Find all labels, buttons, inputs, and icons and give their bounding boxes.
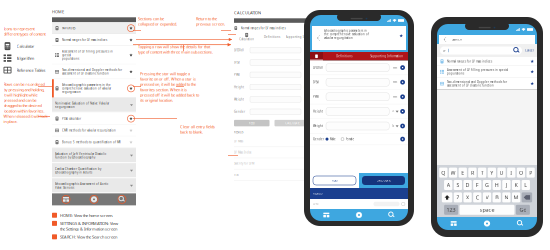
button[interactable]: J (502, 180, 511, 190)
button[interactable]: Home (310, 209, 343, 221)
staticText: L (524, 181, 527, 189)
button[interactable]: H (493, 180, 501, 190)
button[interactable]: W (449, 168, 457, 178)
button[interactable]: V (483, 192, 491, 202)
button[interactable]: Shift (442, 192, 452, 202)
button[interactable]: Home (52, 193, 80, 205)
button[interactable]: Go (516, 205, 530, 215)
staticText: LVID(d) (234, 48, 244, 52)
staticText: PWd (313, 95, 319, 98)
staticText: LV (443, 49, 446, 52)
staticText: Go (519, 206, 526, 213)
button[interactable]: K (512, 180, 520, 190)
staticText: Reference Tables (16, 67, 45, 73)
button[interactable]: 123 (444, 205, 458, 215)
button[interactable]: Delete (522, 192, 532, 202)
button[interactable]: PISA calculator (52, 113, 136, 124)
staticText: I (510, 169, 512, 176)
staticText: Calculation (239, 37, 254, 41)
button[interactable]: Settings (343, 209, 375, 221)
button[interactable]: Cardiac Chamber Quantification by Echoca… (52, 163, 136, 178)
button[interactable]: Search (504, 217, 537, 230)
staticText: mm (393, 95, 397, 98)
button[interactable]: Q (439, 168, 447, 178)
button[interactable]: Echocardiographic parameters in the comp… (52, 79, 136, 98)
button[interactable]: RESET (310, 173, 359, 188)
staticText: SEARCH: View the Search screen (60, 234, 117, 240)
staticText: Normal ranges for LV mass indices (62, 38, 107, 42)
staticText: RESET (331, 179, 337, 182)
button[interactable]: O (517, 168, 525, 178)
staticText: E (461, 169, 464, 176)
button[interactable]: Two-dimensional and Doppler methods for … (52, 64, 136, 79)
button[interactable]: Back (442, 35, 448, 44)
staticText: C (476, 194, 479, 201)
button[interactable]: U (497, 168, 506, 178)
button[interactable]: Assessment of LV filling pressures in sp… (52, 46, 136, 64)
staticText: SEARCH (452, 38, 462, 41)
button[interactable]: Bonus: 5 methods to quantification of MR (52, 136, 136, 148)
button[interactable]: Search (375, 209, 408, 221)
staticText: HOME: View the home screen. (60, 213, 113, 218)
staticText: Two-dimensional and Doppler methods for … (62, 68, 122, 75)
button[interactable]: Two-dimensional and Doppler methods for … (437, 78, 537, 90)
staticText: W (451, 169, 456, 176)
button[interactable]: N (502, 192, 511, 202)
staticText: SETTINGS & INFORMATION: View the Setting… (60, 221, 118, 231)
button[interactable]: I (507, 168, 515, 178)
button[interactable]: Echocardiographic Assessment of Aortic V… (52, 178, 136, 193)
button[interactable]: B (493, 192, 501, 202)
button[interactable]: D (463, 180, 472, 190)
button[interactable]: RESET (234, 120, 269, 126)
button[interactable]: Normal ranges for LV mass indices (52, 34, 136, 46)
staticText: IVSd (234, 61, 240, 64)
button[interactable]: Noninvasive Evaluation of Native Valvula… (52, 98, 136, 113)
button[interactable]: A (444, 180, 452, 190)
button[interactable]: Settings (80, 193, 108, 205)
button[interactable]: C (473, 192, 481, 202)
button[interactable]: FAVORITES (52, 22, 136, 34)
staticText: Definitions (336, 54, 352, 58)
button[interactable]: L (522, 180, 530, 190)
staticText: Icons to represent different types of co… (3, 26, 45, 37)
button[interactable]: Back (315, 29, 322, 47)
staticText: CALCULATE (376, 179, 390, 182)
button[interactable]: CALCULATE (274, 120, 310, 126)
staticText: D (466, 181, 470, 189)
staticText: Gender (313, 137, 324, 141)
button[interactable]: space (459, 205, 514, 215)
button[interactable]: T (478, 168, 486, 178)
button[interactable]: P (526, 168, 535, 178)
staticText: Q (441, 169, 445, 176)
button[interactable]: Evaluation of Left Ventricular Diastolic… (52, 148, 136, 163)
button[interactable]: Z (454, 192, 462, 202)
button[interactable]: G (483, 180, 491, 190)
button[interactable]: F (473, 180, 481, 190)
button[interactable]: Home (437, 217, 470, 230)
button[interactable]: Settings (470, 217, 504, 230)
button[interactable]: CALCULATE (359, 173, 408, 188)
staticText: Rows can be re-ordered by pressing and h… (3, 82, 47, 124)
button[interactable]: Search (108, 193, 136, 205)
button[interactable]: S (454, 180, 462, 190)
button[interactable]: Y (488, 168, 496, 178)
button[interactable]: X (463, 192, 472, 202)
staticText: mm (393, 66, 397, 69)
staticText: Noninvasive Evaluation of Native Valvula… (55, 102, 109, 109)
button[interactable]: CMR methods for valvular regurgitation (52, 124, 136, 136)
staticText: Bonus: 5 methods to quantification of MR (62, 140, 121, 144)
staticText: Echocardiographic Assessment of Aortic V… (55, 182, 108, 189)
staticText: LVM (313, 202, 318, 206)
button[interactable]: Cancel (525, 49, 534, 52)
button[interactable]: M (512, 192, 520, 202)
staticText: Severity for LVM (234, 162, 254, 165)
button[interactable]: E (459, 168, 467, 178)
button[interactable]: R (468, 168, 477, 178)
button[interactable]: Normal ranges for LV mass indices (437, 57, 537, 66)
staticText: IVSd (313, 80, 319, 84)
button[interactable]: Assessment of LV filling pressures in sp… (437, 66, 537, 78)
staticText: Y (490, 169, 493, 176)
